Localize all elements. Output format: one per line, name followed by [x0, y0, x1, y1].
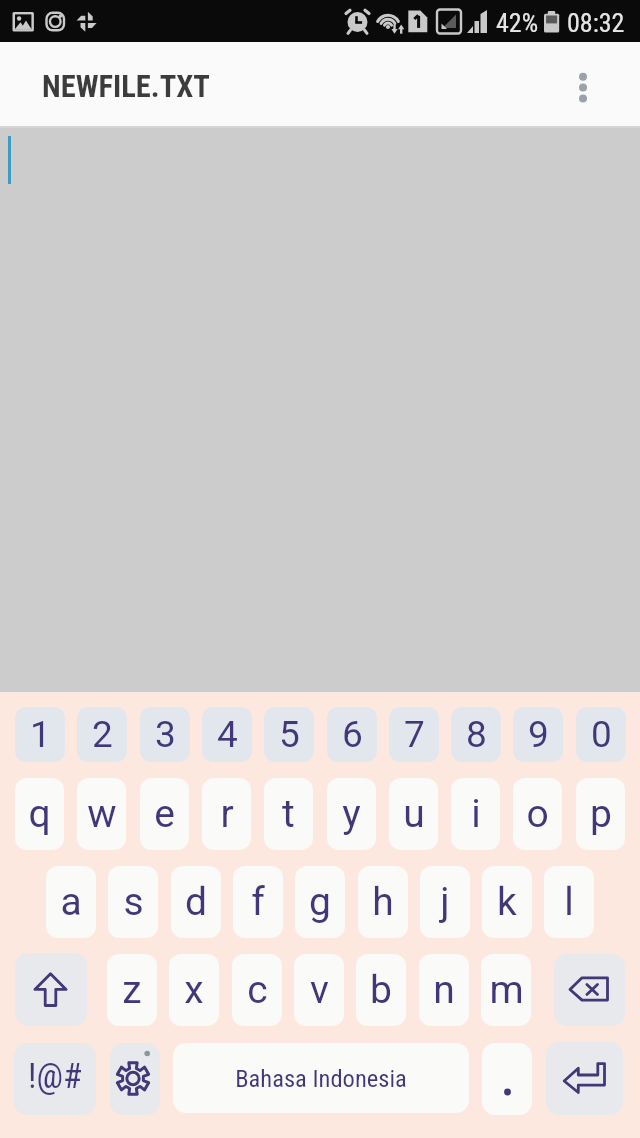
staticText: NEWFILE.TXT [42, 69, 210, 105]
button[interactable]: Period [482, 1043, 532, 1115]
staticText: 2 [92, 713, 113, 756]
button[interactable]: More options [561, 62, 605, 106]
staticText: g [309, 879, 331, 925]
button[interactable]: x [169, 954, 219, 1026]
staticText: j [440, 879, 450, 925]
button[interactable]: o [513, 778, 562, 850]
button[interactable]: z [107, 954, 157, 1026]
button[interactable]: 1 [15, 707, 65, 762]
staticText: 42% [496, 8, 539, 38]
button[interactable]: r [202, 778, 251, 850]
staticText: f [251, 879, 265, 925]
staticText: c [247, 967, 268, 1013]
staticText: s [123, 879, 144, 925]
button[interactable]: Backspace [554, 954, 625, 1026]
button[interactable]: y [327, 778, 376, 850]
button[interactable]: 7 [389, 707, 439, 762]
staticText: w [87, 791, 117, 837]
staticText: e [154, 791, 175, 837]
staticText: b [370, 967, 392, 1013]
button[interactable]: Bahasa Indonesia [173, 1043, 469, 1113]
button[interactable]: 9 [513, 707, 563, 762]
button[interactable]: 6 [327, 707, 377, 762]
button[interactable]: f [233, 866, 283, 938]
button[interactable]: 5 [264, 707, 314, 762]
button[interactable]: m [481, 954, 531, 1026]
button[interactable]: q [15, 778, 64, 850]
button[interactable]: v [294, 954, 344, 1026]
staticText: k [497, 879, 517, 925]
button[interactable]: 0 [576, 707, 626, 762]
button[interactable]: n [419, 954, 469, 1026]
staticText: z [122, 967, 142, 1013]
button[interactable]: Shift [15, 953, 87, 1026]
button[interactable]: !@# [14, 1043, 96, 1115]
staticText: m [489, 967, 524, 1013]
button[interactable]: u [389, 778, 438, 850]
staticText: l [564, 879, 574, 925]
staticText: o [526, 791, 549, 837]
staticText: Bahasa Indonesia [235, 1064, 407, 1093]
staticText: d [185, 879, 207, 925]
staticText: i [471, 791, 481, 837]
staticText: 9 [528, 713, 549, 756]
staticText: 7 [404, 713, 425, 756]
staticText: h [372, 879, 394, 925]
button[interactable]: p [576, 778, 625, 850]
staticText: p [590, 791, 612, 837]
staticText: 08:32 [567, 8, 625, 38]
staticText: a [60, 879, 82, 925]
button[interactable]: l [544, 866, 594, 938]
button[interactable]: h [358, 866, 408, 938]
button[interactable]: 2 [77, 707, 127, 762]
button[interactable]: 8 [451, 707, 501, 762]
staticText: 1 [30, 713, 51, 756]
button[interactable]: s [108, 866, 158, 938]
staticText: y [342, 791, 361, 837]
staticText: q [28, 791, 51, 837]
staticText: 4 [217, 713, 238, 756]
button[interactable]: t [264, 778, 313, 850]
button[interactable]: 4 [202, 707, 252, 762]
staticText: r [220, 791, 234, 837]
staticText: t [282, 791, 295, 837]
button[interactable]: e [140, 778, 189, 850]
button[interactable]: j [420, 866, 470, 938]
button[interactable]: b [356, 954, 406, 1026]
staticText: 8 [466, 713, 487, 756]
staticText: 5 [279, 713, 300, 756]
button[interactable]: d [171, 866, 221, 938]
button[interactable]: Enter [546, 1042, 623, 1115]
staticText: n [433, 967, 455, 1013]
button[interactable]: 3 [140, 707, 190, 762]
button[interactable]: Settings [110, 1043, 160, 1115]
staticText: 0 [591, 713, 612, 756]
button[interactable]: c [232, 954, 282, 1026]
staticText: !@# [28, 1056, 82, 1096]
button[interactable]: i [451, 778, 500, 850]
staticText: u [403, 791, 425, 837]
button[interactable]: g [295, 866, 345, 938]
staticText: 3 [155, 713, 176, 756]
button[interactable]: k [482, 866, 532, 938]
button[interactable]: w [77, 778, 126, 850]
staticText: v [310, 967, 329, 1013]
staticText: 6 [342, 713, 363, 756]
button[interactable]: a [46, 866, 96, 938]
staticText: x [184, 967, 204, 1013]
